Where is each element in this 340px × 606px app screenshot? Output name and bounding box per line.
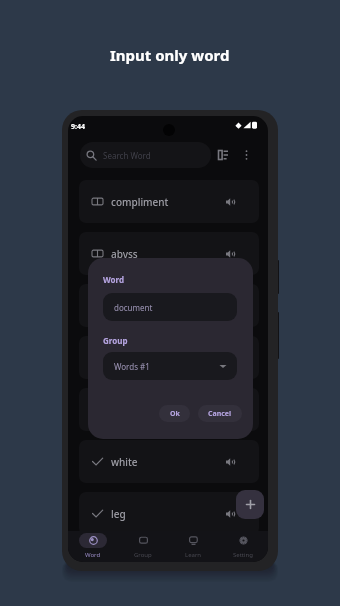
staticText: document: [114, 302, 153, 313]
staticText: Learn: [185, 551, 202, 559]
button[interactable]: Sort: [213, 145, 233, 165]
button[interactable]: Cancel: [198, 405, 242, 422]
button[interactable]: Words #1: [103, 352, 237, 380]
button[interactable]: document: [103, 293, 237, 321]
button[interactable]: Add word: [236, 490, 264, 519]
staticText: Words #1: [114, 361, 150, 372]
staticText: Cancel: [208, 409, 232, 419]
button[interactable]: Setting: [218, 531, 268, 562]
staticText: Search Word: [103, 150, 151, 161]
staticText: Ok: [170, 409, 180, 419]
staticText: abyss: [111, 247, 138, 261]
button[interactable]: Group: [118, 531, 168, 562]
button[interactable]: Word: [68, 531, 118, 562]
staticText: white: [111, 455, 138, 469]
button[interactable]: leg: [79, 492, 259, 535]
button[interactable]: abyss: [79, 232, 259, 275]
staticText: Input only word: [110, 45, 230, 65]
button[interactable]: compliment: [79, 180, 259, 223]
staticText: Word: [103, 274, 125, 285]
staticText: arise: [111, 299, 135, 313]
button[interactable]: Learn: [168, 531, 218, 562]
button[interactable]: deep: [79, 336, 259, 379]
button[interactable]: Ok: [159, 405, 190, 422]
staticText: 9:44: [71, 122, 85, 132]
button[interactable]: sew: [79, 388, 259, 431]
staticText: deep: [111, 351, 135, 365]
staticText: leg: [111, 507, 126, 521]
button[interactable]: Search Word: [80, 142, 211, 168]
staticText: compliment: [111, 195, 169, 209]
staticText: Group: [103, 335, 128, 346]
button[interactable]: arise: [79, 284, 259, 327]
staticText: Setting: [233, 551, 253, 559]
button[interactable]: More options: [236, 145, 256, 165]
staticText: Word: [85, 551, 101, 559]
staticText: Group: [134, 551, 152, 559]
button[interactable]: white: [79, 440, 259, 483]
